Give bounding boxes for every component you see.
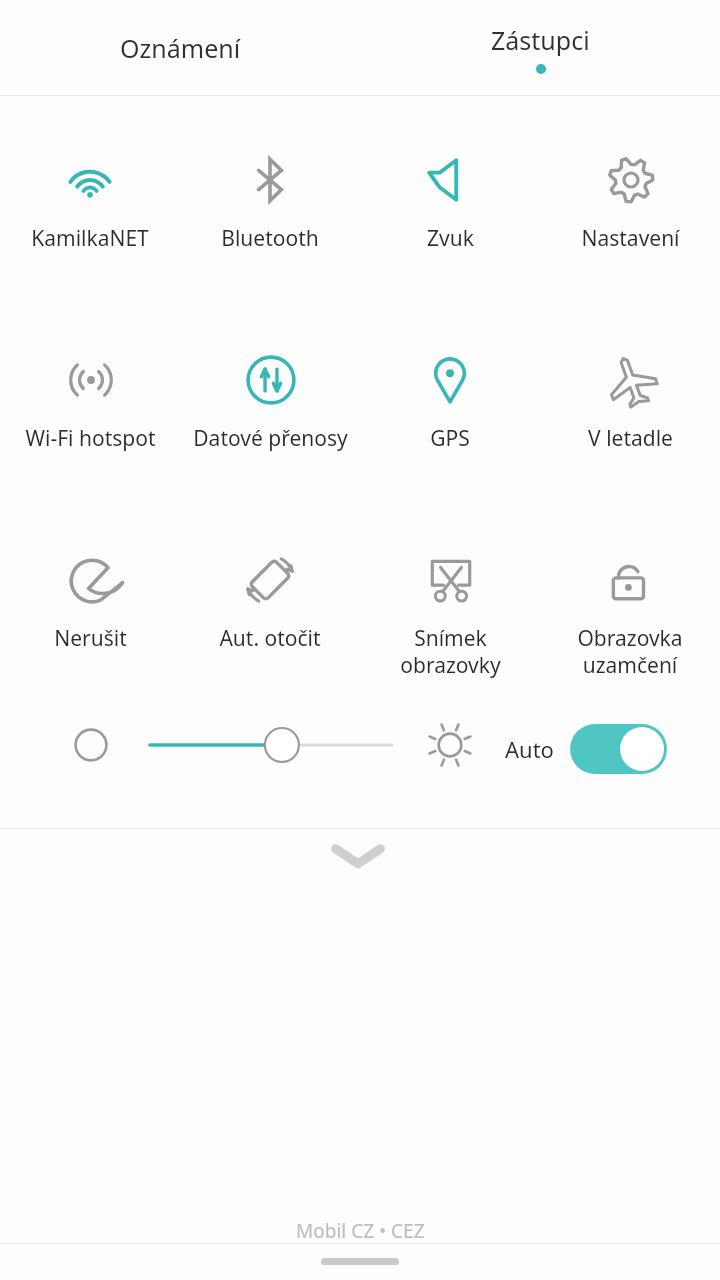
button[interactable]: Zvuk	[360, 150, 540, 310]
button[interactable]: Nastavení	[540, 150, 720, 310]
staticText: KamilkaNET	[31, 224, 149, 253]
button[interactable]: Wi-Fi hotspot	[0, 350, 180, 510]
staticText: Zástupci	[491, 23, 590, 57]
button[interactable]: Nerušit	[0, 550, 180, 710]
button[interactable]: Zástupci	[360, 0, 720, 96]
staticText: GPS	[430, 424, 470, 453]
staticText: Zvuk	[427, 224, 474, 253]
staticText: Bluetooth	[221, 224, 319, 253]
button[interactable]: Oznámení	[0, 0, 360, 96]
button[interactable]: Aut. otočit	[180, 550, 360, 710]
button[interactable]: Auto	[505, 720, 695, 778]
staticText: Nerušit	[54, 624, 127, 653]
button[interactable]: Datové přenosy	[180, 350, 360, 510]
staticText: Datové přenosy	[193, 424, 348, 453]
button[interactable]: V letadle	[540, 350, 720, 510]
button[interactable]: Low brightness	[66, 720, 116, 770]
staticText: Aut. otočit	[219, 624, 321, 653]
button[interactable]: Brightness slider	[140, 720, 402, 770]
button[interactable]: Obrazovka uzamčení	[540, 550, 720, 710]
staticText: Wi-Fi hotspot	[25, 424, 156, 453]
button[interactable]: GPS	[360, 350, 540, 510]
button[interactable]: Collapse	[310, 832, 406, 880]
staticText: Nastavení	[581, 224, 680, 253]
button[interactable]: KamilkaNET	[0, 150, 180, 310]
button[interactable]: High brightness	[425, 720, 475, 770]
staticText: Mobil CZ • CEZ	[296, 1218, 425, 1244]
staticText: V letadle	[588, 424, 673, 453]
button[interactable]: Snímek obrazovky	[360, 550, 540, 710]
staticText: Obrazovka uzamčení	[577, 624, 683, 679]
staticText: Auto	[505, 734, 554, 764]
staticText: Oznámení	[120, 31, 241, 65]
staticText: Snímek obrazovky	[400, 624, 501, 679]
button[interactable]: Bluetooth	[180, 150, 360, 310]
